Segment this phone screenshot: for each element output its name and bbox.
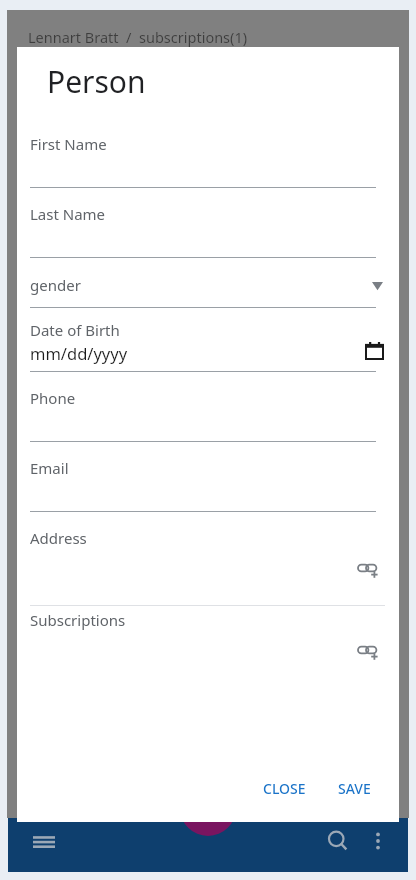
staticText: Email xyxy=(30,458,69,478)
button[interactable]: More options xyxy=(358,821,398,861)
staticText: Subscriptions xyxy=(30,610,126,630)
button[interactable]: Add xyxy=(180,780,236,836)
button[interactable]: Phone xyxy=(17,384,399,454)
staticText: mm/dd/yyyy xyxy=(30,342,128,364)
button[interactable]: Add Address link xyxy=(353,554,383,584)
staticText: CLOSE xyxy=(263,779,306,798)
button[interactable]: Date of Birth xyxy=(17,320,399,372)
staticText: Person xyxy=(47,61,146,102)
button[interactable]: Menu xyxy=(24,821,64,861)
button[interactable]: First Name xyxy=(17,130,399,200)
button[interactable]: SAVE xyxy=(326,771,383,806)
button[interactable]: Email xyxy=(17,454,399,524)
staticText: Date of Birth xyxy=(30,320,120,340)
staticText: SAVE xyxy=(338,779,371,798)
button[interactable]: Add Subscriptions link xyxy=(353,636,383,666)
staticText: Last Name xyxy=(30,204,106,224)
staticText: Phone xyxy=(30,388,76,408)
staticText: Address xyxy=(30,528,87,548)
button[interactable]: gender xyxy=(17,270,399,308)
button[interactable]: CLOSE xyxy=(251,771,318,806)
staticText: Lennart Bratt / subscriptions(1) xyxy=(28,27,248,47)
button[interactable]: Last Name xyxy=(17,200,399,270)
staticText: First Name xyxy=(30,134,107,154)
staticText: gender xyxy=(30,275,81,295)
button[interactable]: Search xyxy=(318,821,358,861)
